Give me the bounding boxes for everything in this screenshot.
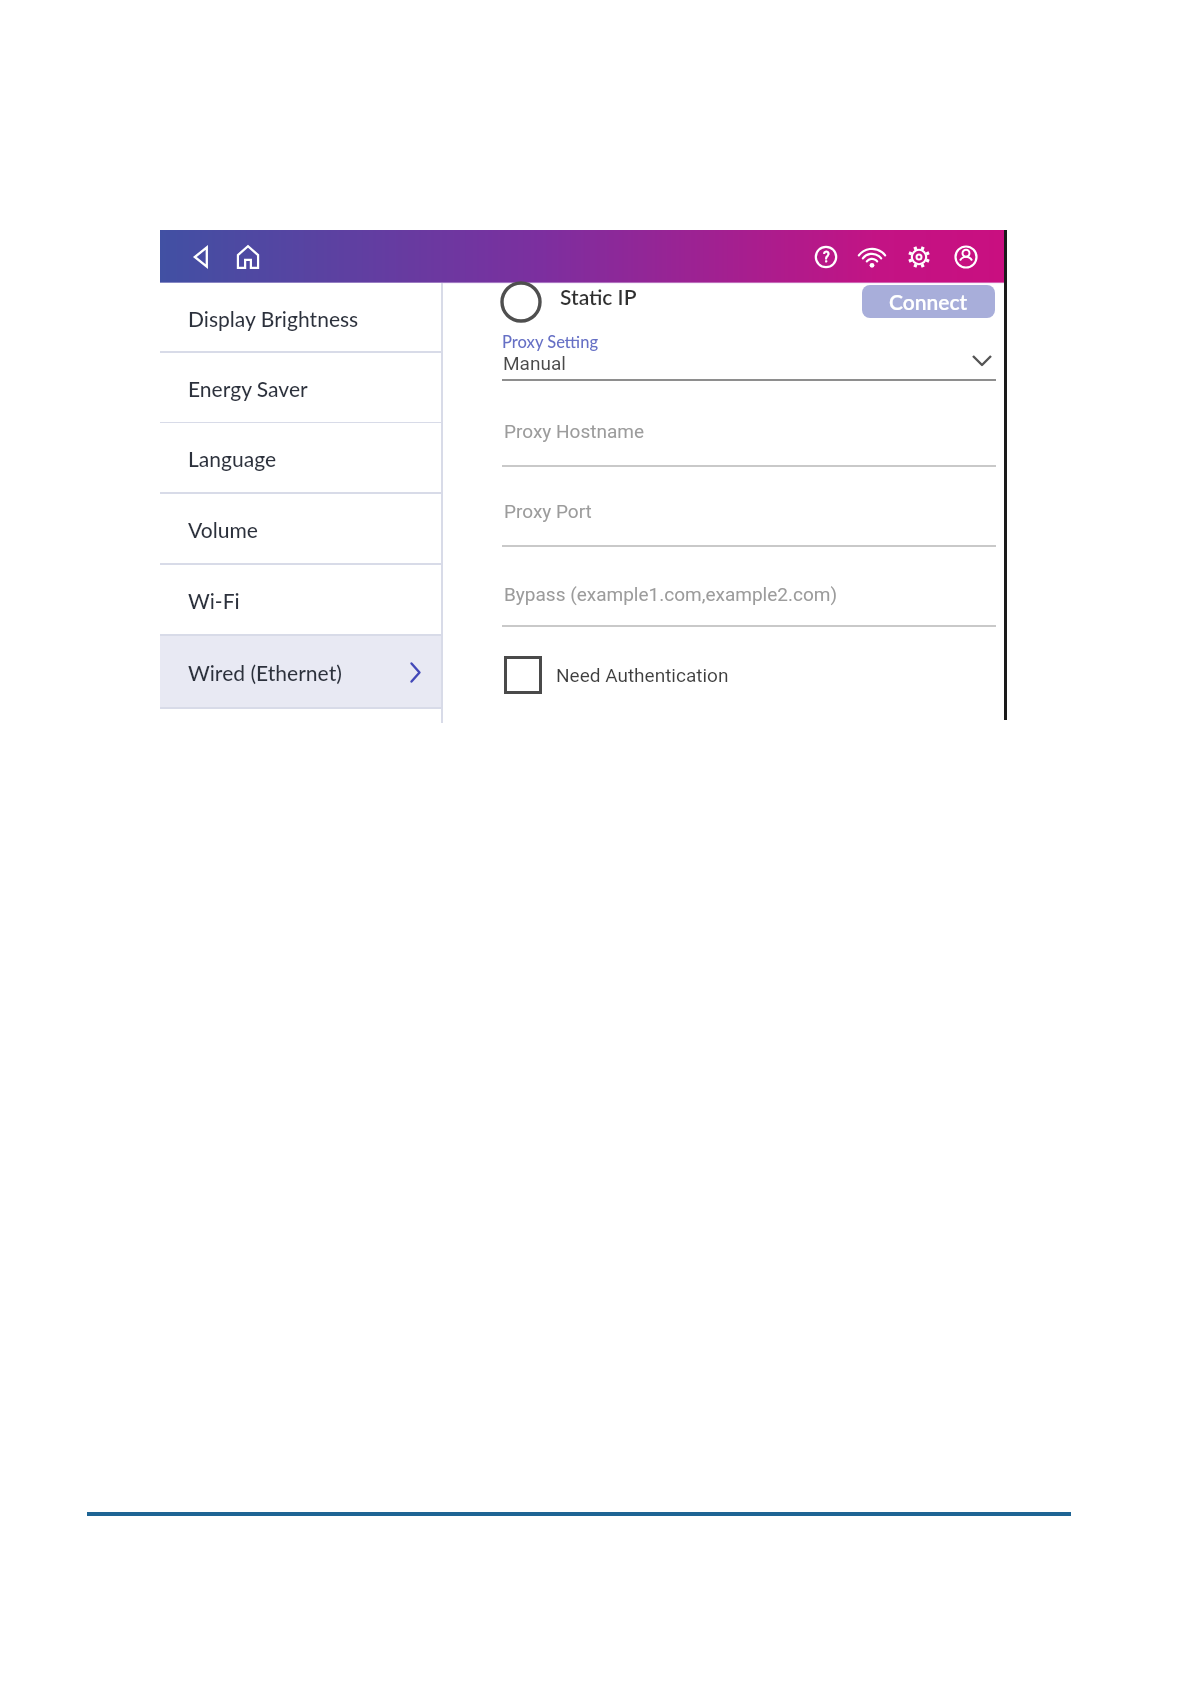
- staticText: Language: [188, 446, 277, 471]
- button[interactable]: Language: [160, 423, 441, 494]
- staticText: Bypass (example1.com,example2.com): [504, 583, 838, 605]
- staticText: Display Brightness: [188, 306, 359, 331]
- staticText: Proxy Hostname: [504, 420, 644, 442]
- button[interactable]: [499, 280, 543, 324]
- button[interactable]: [907, 245, 931, 269]
- button[interactable]: Wi-Fi: [160, 565, 441, 636]
- button[interactable]: [859, 244, 885, 270]
- button[interactable]: [954, 245, 978, 269]
- button[interactable]: Volume: [160, 494, 441, 565]
- staticText: Wi-Fi: [188, 588, 240, 613]
- button[interactable]: Display Brightness: [160, 283, 441, 353]
- staticText: Wired (Ethernet): [188, 660, 342, 685]
- staticText: Proxy Setting: [502, 332, 599, 352]
- staticText: Volume: [188, 517, 258, 542]
- button[interactable]: ?: [814, 245, 838, 269]
- button[interactable]: [236, 245, 260, 269]
- button[interactable]: [190, 245, 214, 269]
- staticText: Connect: [889, 289, 968, 314]
- button[interactable]: Proxy Setting: [502, 325, 996, 381]
- staticText: Static IP: [560, 284, 637, 309]
- button[interactable]: Energy Saver: [160, 353, 441, 424]
- button[interactable]: Wired (Ethernet): [160, 636, 441, 709]
- staticText: Proxy Port: [504, 500, 592, 522]
- button[interactable]: Connect: [862, 285, 995, 318]
- staticText: Manual: [503, 352, 566, 374]
- staticText: Energy Saver: [188, 376, 308, 401]
- staticText: Need Authentication: [556, 664, 729, 686]
- staticText: ?: [823, 249, 830, 265]
- button[interactable]: Need Authentication: [504, 656, 878, 694]
